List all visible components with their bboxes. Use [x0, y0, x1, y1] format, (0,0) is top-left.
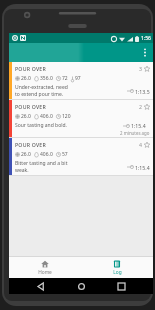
staticText: Log — [113, 269, 122, 276]
button[interactable]: Log — [81, 257, 153, 278]
button[interactable]: POUR OVER — [9, 100, 153, 137]
staticText: 3 — [139, 65, 142, 72]
staticText: 72 — [62, 75, 68, 82]
staticText: Under-extracted, need to extend pour tim… — [15, 84, 71, 98]
button[interactable]: POUR OVER — [9, 138, 153, 175]
staticText: 97 — [75, 75, 81, 82]
staticText: POUR OVER — [15, 141, 46, 148]
button[interactable]: Back — [33, 278, 49, 294]
button[interactable]: Home — [73, 278, 89, 294]
staticText: 120 — [62, 113, 71, 120]
button[interactable]: Recent apps — [113, 278, 129, 294]
button[interactable]: Home — [9, 257, 81, 278]
staticText: 26.0 — [21, 113, 31, 120]
staticText: 356.0 — [40, 75, 53, 82]
staticText: 1:13.5 — [135, 88, 150, 95]
staticText: 1:15.4 — [131, 122, 146, 129]
staticText: 26.0 — [21, 151, 31, 158]
staticText: 406.0 — [40, 113, 53, 120]
staticText: 406.0 — [40, 151, 53, 158]
staticText: 2 — [139, 103, 142, 110]
staticText: 1:56 — [141, 35, 151, 42]
staticText: Bitter tasting and a bit weak. — [15, 160, 71, 174]
staticText: 1:15.4 — [135, 164, 150, 171]
staticText: 57 — [62, 151, 68, 158]
staticText: 26.0 — [21, 75, 31, 82]
staticText: Home — [38, 269, 52, 276]
staticText: POUR OVER — [15, 103, 46, 110]
staticText: 4 — [139, 141, 142, 148]
staticText: 2 minutes ago — [120, 130, 150, 136]
staticText: POUR OVER — [15, 65, 46, 72]
staticText: Sour tasting and bold. — [15, 122, 67, 129]
button[interactable]: POUR OVER — [9, 62, 153, 99]
button[interactable]: More options — [137, 43, 153, 62]
